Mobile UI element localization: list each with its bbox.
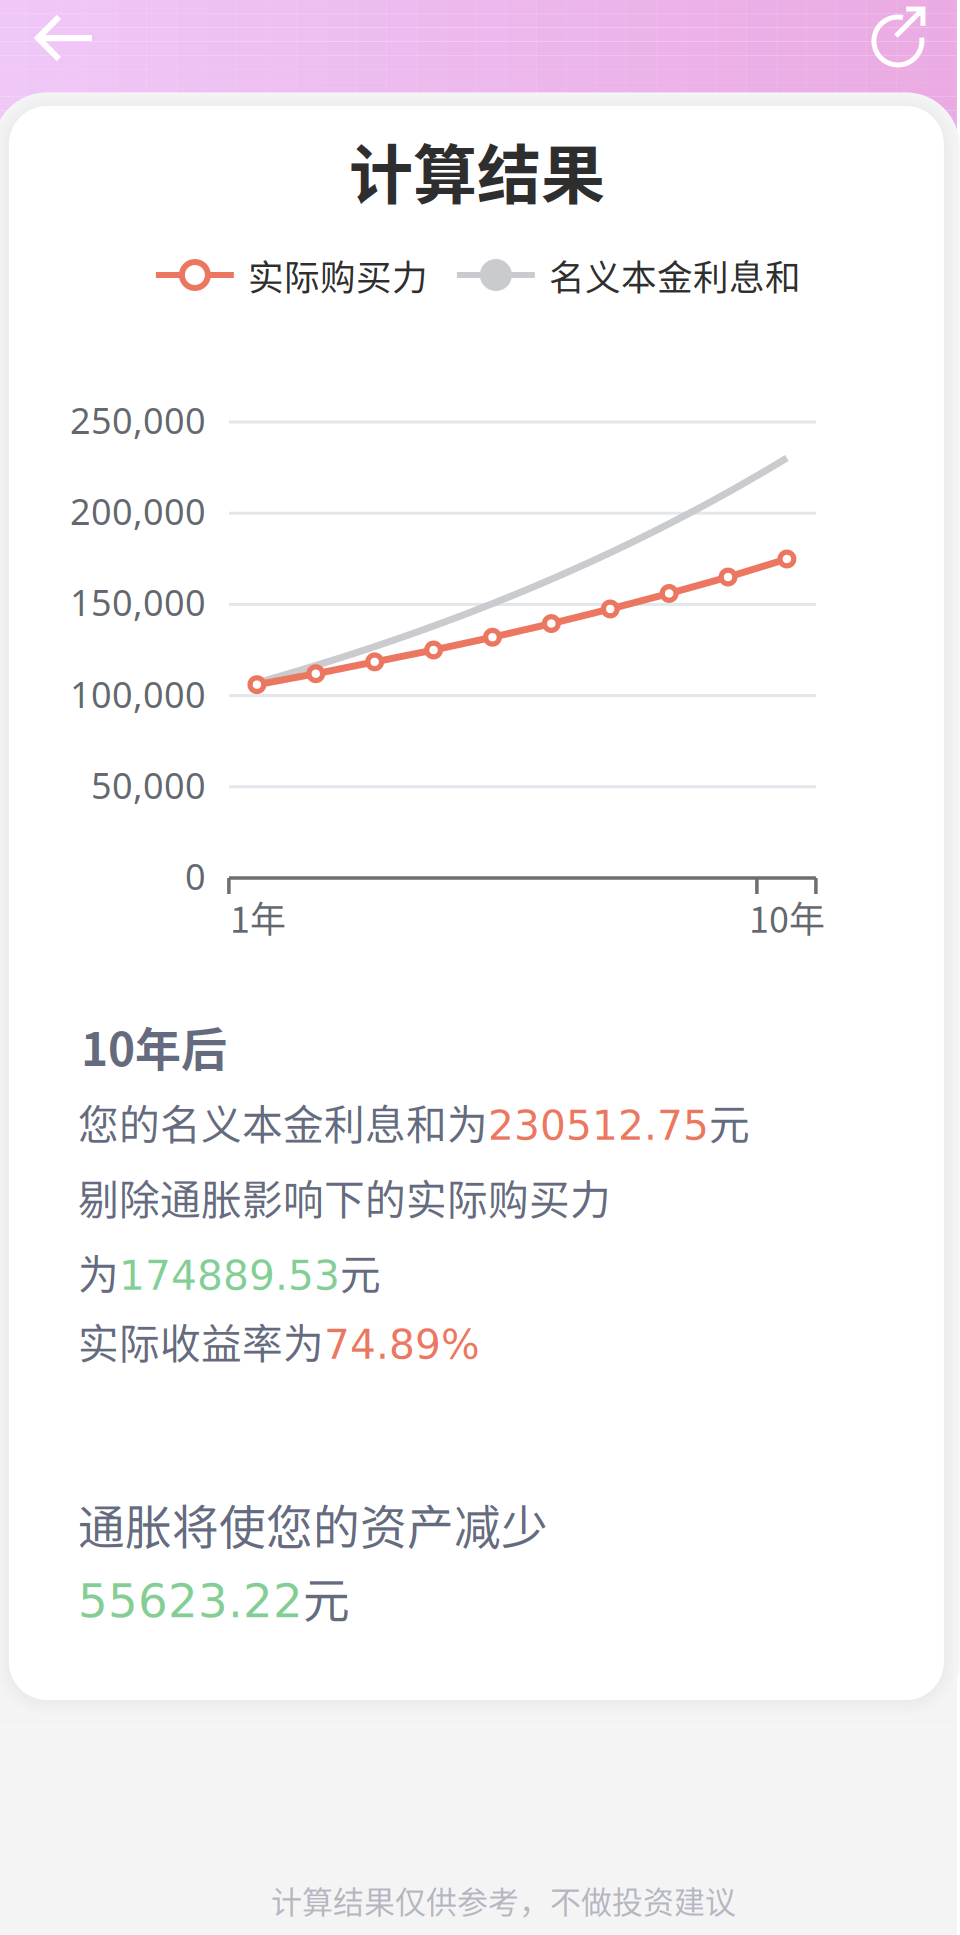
- staticText: 10年: [749, 891, 825, 943]
- staticText: 剔除通胀影响下的实际购买力: [78, 1168, 611, 1226]
- button[interactable]: Back: [12, 0, 118, 85]
- staticText: 100,000: [70, 669, 206, 718]
- staticText: 250,000: [70, 395, 206, 444]
- staticText: 0: [185, 851, 206, 900]
- staticText: 74.89%: [324, 1321, 480, 1368]
- staticText: 150,000: [70, 577, 206, 626]
- staticText: 实际收益率为: [78, 1312, 324, 1370]
- staticText: 1年: [230, 891, 286, 943]
- staticText: 10年后: [81, 1013, 227, 1079]
- staticText: 55623.22: [78, 1574, 303, 1628]
- staticText: 您的名义本金利息和为: [78, 1093, 488, 1151]
- staticText: 174889.53: [119, 1252, 340, 1299]
- staticText: 元: [709, 1093, 750, 1151]
- staticText: 元: [303, 1563, 350, 1631]
- staticText: 名义本金利息和: [549, 249, 801, 301]
- staticText: 实际购买力: [248, 249, 428, 301]
- staticText: 计算结果仅供参考，不做投资建议: [271, 1878, 736, 1922]
- staticText: 50,000: [91, 760, 206, 809]
- staticText: 通胀将使您的资产减少: [78, 1490, 548, 1558]
- staticText: 元: [340, 1243, 381, 1301]
- button[interactable]: Share: [850, 0, 950, 89]
- staticText: 计算结果: [349, 124, 605, 216]
- staticText: 为: [78, 1243, 119, 1301]
- staticText: 230512.75: [488, 1102, 709, 1149]
- staticText: 200,000: [70, 486, 206, 535]
